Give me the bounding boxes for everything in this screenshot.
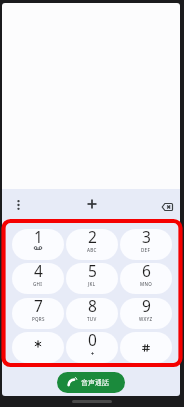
staticText: 9 (142, 298, 151, 316)
button[interactable]: 2 (66, 229, 118, 260)
staticText: 2 (88, 229, 97, 247)
staticText: WXYZ (139, 316, 153, 322)
staticText: 5 (88, 263, 97, 281)
staticText: 1 (34, 229, 43, 247)
button[interactable]: 0 (66, 332, 118, 363)
staticText: 4 (34, 263, 43, 281)
staticText: ABC (87, 247, 97, 253)
button[interactable]: 4 (12, 263, 64, 294)
staticText: DEF (141, 247, 151, 253)
staticText: PQRS (32, 316, 45, 322)
staticText: 7 (34, 298, 43, 316)
staticText: MNO (140, 281, 153, 287)
button[interactable]: 5 (66, 263, 118, 294)
staticText: JKL (88, 281, 96, 287)
staticText: GHI (33, 281, 43, 287)
button[interactable]: 9 (120, 298, 172, 329)
button[interactable]: 音声通話 (57, 372, 125, 393)
staticText: 3 (142, 229, 151, 247)
staticText: 音声通話 (81, 378, 109, 387)
button[interactable]: 3 (120, 229, 172, 260)
staticText: 0 (88, 332, 97, 350)
staticText: 8 (88, 298, 97, 316)
staticText: 6 (142, 263, 151, 281)
button[interactable]: 6 (120, 263, 172, 294)
button[interactable] (10, 197, 26, 213)
button[interactable] (12, 332, 64, 363)
staticText: TUV (87, 316, 97, 322)
button[interactable]: 8 (66, 298, 118, 329)
button[interactable] (158, 199, 176, 214)
button[interactable] (120, 332, 172, 363)
button[interactable]: 1 (12, 229, 64, 260)
button[interactable]: 7 (12, 298, 64, 329)
